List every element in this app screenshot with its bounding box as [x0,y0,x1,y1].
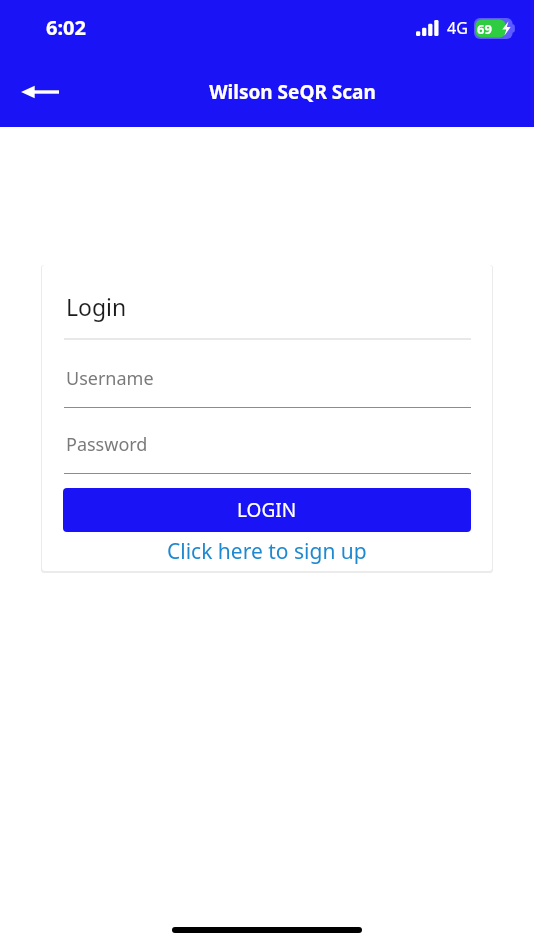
button[interactable]: Username [64,366,471,408]
staticText: 6:02 [46,14,86,41]
button[interactable]: Back [10,68,70,116]
button[interactable]: Click here to sign up [42,532,492,571]
staticText: Password [66,432,148,457]
button[interactable]: LOGIN [63,488,471,532]
staticText: Click here to sign up [167,537,367,566]
staticText: 69 [477,20,492,38]
staticText: LOGIN [237,497,297,523]
staticText: Username [66,366,154,391]
staticText: Wilson SeQR Scan [209,79,376,105]
staticText: 4G [447,17,468,39]
staticText: Login [66,291,127,322]
button[interactable]: Password [64,432,471,474]
